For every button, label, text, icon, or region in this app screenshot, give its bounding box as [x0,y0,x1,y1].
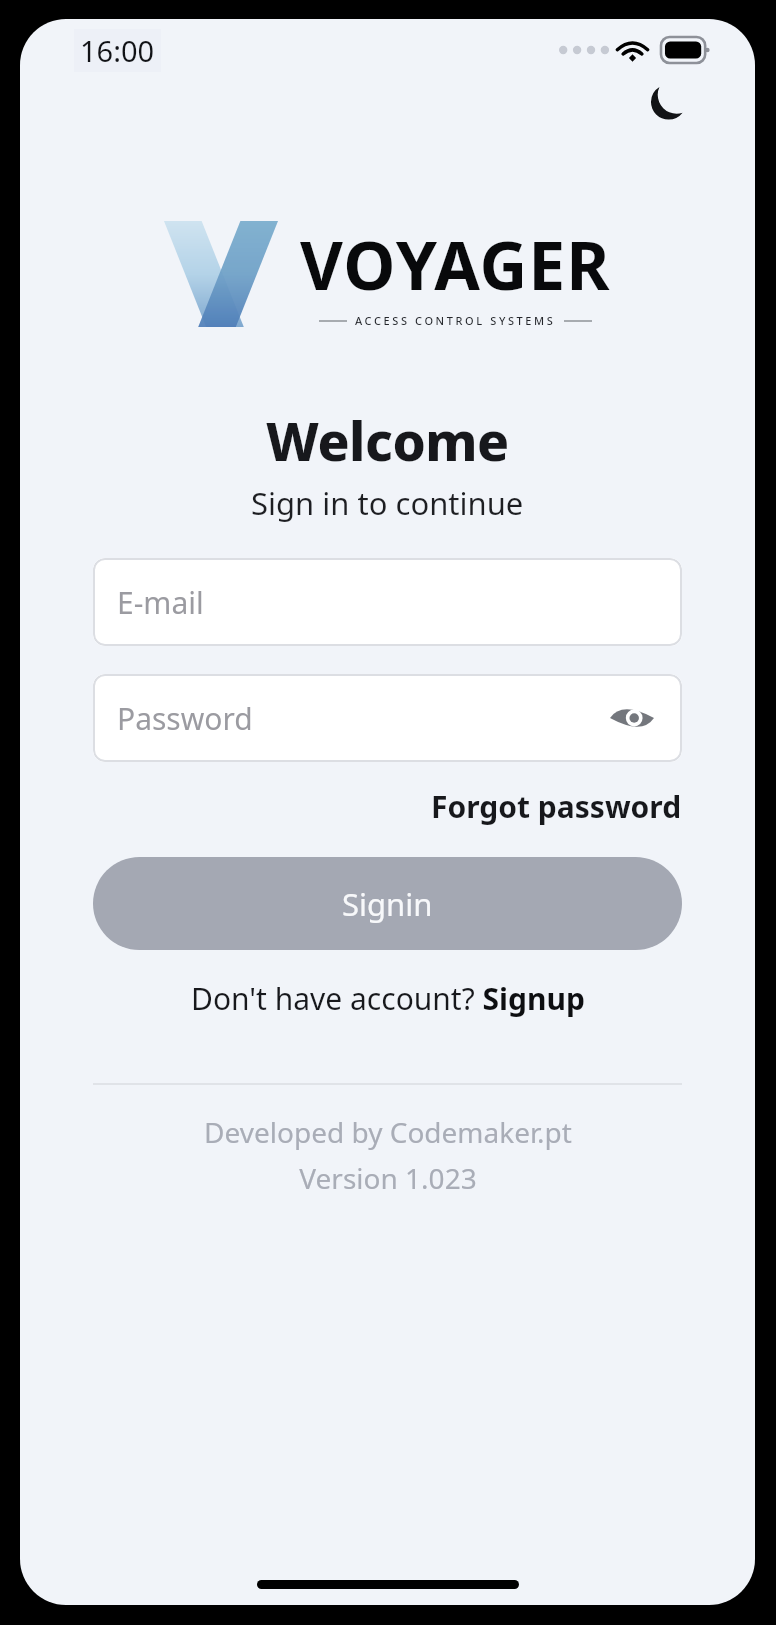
button[interactable]: Password [93,674,682,762]
staticText: Don't have account? Signup [191,978,585,1019]
button[interactable]: Signin [93,857,682,950]
staticText: Signin [342,883,433,925]
staticText: VOYAGER [300,219,611,309]
staticText: 16:00 [80,31,155,70]
staticText: Forgot password [431,786,682,827]
staticText: Developed by Codemaker.pt [204,1113,572,1151]
button[interactable]: E-mail [93,558,682,646]
button[interactable]: Forgot password [431,782,682,831]
button[interactable]: Show password [606,692,658,744]
staticText: ACCESS CONTROL SYSTEMS [355,313,556,328]
button[interactable]: Toggle dark mode [657,92,713,148]
staticText: Sign in to continue [251,482,524,524]
staticText: Welcome [266,404,509,476]
staticText: E-mail [117,582,204,623]
staticText: Version 1.023 [299,1159,477,1197]
button[interactable]: Don't have account? Signup [183,974,593,1023]
staticText: Password [117,698,253,739]
